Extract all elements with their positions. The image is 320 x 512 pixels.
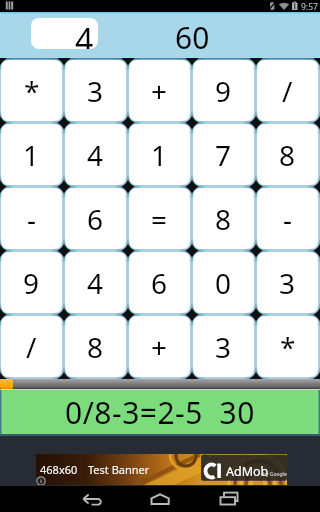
button[interactable]: - bbox=[1, 188, 62, 249]
staticText: 6 bbox=[87, 200, 104, 238]
staticText: 0 bbox=[215, 264, 232, 302]
button[interactable]: 8 bbox=[257, 124, 318, 185]
staticText: 1 bbox=[23, 136, 40, 174]
staticText: 3 bbox=[279, 264, 296, 302]
staticText: * bbox=[280, 328, 296, 366]
button[interactable]: 1 bbox=[1, 124, 62, 185]
button[interactable]: 9 bbox=[1, 252, 62, 313]
button[interactable]: = bbox=[129, 188, 190, 249]
button[interactable]: 1 bbox=[129, 124, 190, 185]
staticText: 8 bbox=[279, 136, 296, 174]
staticText: 3 bbox=[215, 328, 232, 366]
button[interactable]: * bbox=[257, 316, 318, 377]
staticText: 1 bbox=[151, 136, 168, 174]
button[interactable]: 8 bbox=[65, 316, 126, 377]
staticText: 8 bbox=[215, 200, 232, 238]
button[interactable]: + bbox=[129, 316, 190, 377]
staticText: AdMob bbox=[226, 463, 269, 480]
staticText: 9 bbox=[23, 264, 40, 302]
button[interactable]: 6 bbox=[129, 252, 190, 313]
staticText: 4 bbox=[75, 18, 94, 49]
staticText: 9 bbox=[215, 72, 232, 110]
staticText: 7 bbox=[215, 136, 232, 174]
button[interactable]: 468x60 bbox=[36, 454, 287, 485]
staticText: 60 bbox=[175, 17, 210, 58]
button[interactable] bbox=[74, 486, 104, 512]
staticText: 8 bbox=[87, 328, 104, 366]
staticText: - bbox=[283, 200, 293, 238]
button[interactable]: * bbox=[1, 60, 62, 121]
staticText: + bbox=[151, 328, 168, 366]
staticText: by Google bbox=[263, 471, 287, 478]
button[interactable]: 3 bbox=[193, 316, 254, 377]
staticText: Test Banner bbox=[88, 462, 150, 477]
button[interactable]: / bbox=[257, 60, 318, 121]
button[interactable]: 6 bbox=[65, 188, 126, 249]
staticText: 3 bbox=[87, 72, 104, 110]
button[interactable]: 8 bbox=[193, 188, 254, 249]
button[interactable]: 9 bbox=[193, 60, 254, 121]
staticText: 4 bbox=[87, 136, 104, 174]
button[interactable]: 0 bbox=[193, 252, 254, 313]
staticText: - bbox=[27, 200, 37, 238]
staticText: 0/8-3=2-5 30 bbox=[65, 392, 255, 433]
staticText: / bbox=[282, 72, 293, 110]
button[interactable]: 3 bbox=[257, 252, 318, 313]
staticText: 4 bbox=[87, 264, 104, 302]
staticText: 468x60 bbox=[40, 462, 78, 477]
button[interactable]: 4 bbox=[31, 18, 98, 49]
staticText: = bbox=[151, 200, 168, 238]
button[interactable] bbox=[218, 486, 248, 512]
button[interactable]: 4 bbox=[65, 252, 126, 313]
button[interactable]: + bbox=[129, 60, 190, 121]
staticText: 6 bbox=[151, 264, 168, 302]
staticText: 9:57 bbox=[301, 1, 318, 13]
button[interactable]: - bbox=[257, 188, 318, 249]
button[interactable]: / bbox=[1, 316, 62, 377]
button[interactable]: 7 bbox=[193, 124, 254, 185]
button[interactable]: 3 bbox=[65, 60, 126, 121]
staticText: * bbox=[24, 72, 40, 110]
button[interactable]: 4 bbox=[65, 124, 126, 185]
staticText: / bbox=[26, 328, 37, 366]
staticText: + bbox=[151, 72, 168, 110]
button[interactable] bbox=[148, 486, 178, 512]
